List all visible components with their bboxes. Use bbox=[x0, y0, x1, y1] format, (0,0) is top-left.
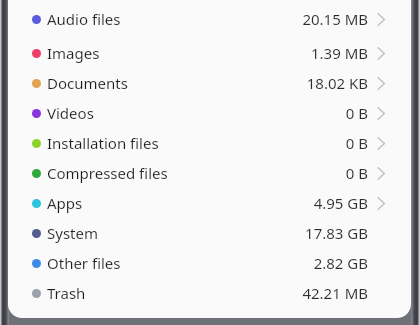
button[interactable]: Videos bbox=[8, 98, 411, 128]
staticText: System bbox=[47, 223, 98, 243]
staticText: 42.21 MB bbox=[302, 283, 368, 303]
staticText: Other files bbox=[47, 253, 121, 273]
staticText: 20.15 MB bbox=[302, 9, 368, 29]
staticText: Documents bbox=[47, 73, 128, 93]
button[interactable]: Documents bbox=[8, 68, 411, 98]
staticText: 18.02 KB bbox=[306, 73, 368, 93]
button[interactable]: Trash bbox=[8, 278, 411, 308]
other: Open Audio files bbox=[377, 13, 385, 26]
other: Open Videos bbox=[377, 107, 385, 120]
staticText: Audio files bbox=[47, 9, 121, 29]
button[interactable]: Other files bbox=[8, 248, 411, 278]
other: Open Compressed files bbox=[377, 167, 385, 180]
staticText: 0 B bbox=[345, 133, 368, 153]
staticText: 1.39 MB bbox=[310, 43, 368, 63]
button[interactable]: Apps bbox=[8, 188, 411, 218]
staticText: Compressed files bbox=[47, 163, 168, 183]
staticText: Trash bbox=[47, 283, 86, 303]
button[interactable]: Audio files bbox=[8, 0, 411, 38]
other: Open Images bbox=[377, 47, 385, 60]
staticText: 4.95 GB bbox=[313, 193, 368, 213]
staticText: Videos bbox=[47, 103, 94, 123]
staticText: 0 B bbox=[345, 163, 368, 183]
other: Open Apps bbox=[377, 197, 385, 210]
other: Open Documents bbox=[377, 77, 385, 90]
staticText: Installation files bbox=[47, 133, 159, 153]
button[interactable]: Installation files bbox=[8, 128, 411, 158]
button[interactable]: Compressed files bbox=[8, 158, 411, 188]
staticText: 2.82 GB bbox=[313, 253, 368, 273]
staticText: Images bbox=[47, 43, 100, 63]
staticText: 17.83 GB bbox=[305, 223, 368, 243]
staticText: 0 B bbox=[345, 103, 368, 123]
other: Open Installation files bbox=[377, 137, 385, 150]
button[interactable]: Images bbox=[8, 38, 411, 68]
button[interactable]: System bbox=[8, 218, 411, 248]
staticText: Apps bbox=[47, 193, 83, 213]
